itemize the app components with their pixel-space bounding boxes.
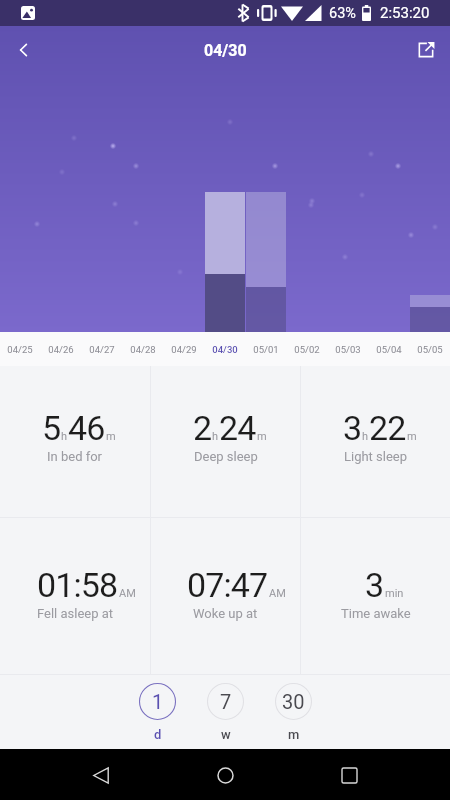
staticText: 07:47 [187, 565, 268, 605]
button[interactable]: 1 [139, 675, 176, 742]
button[interactable]: 04/29 [163, 332, 204, 366]
button[interactable]: 05/03 [327, 332, 368, 366]
staticText: 3 [343, 408, 362, 448]
button[interactable]: 3 [301, 518, 450, 674]
button[interactable]: 3 [301, 366, 450, 517]
staticText: 3 [365, 565, 384, 605]
staticText: 7 [220, 690, 232, 713]
staticText: 04/27 [89, 344, 115, 355]
staticText: 04/26 [48, 344, 74, 355]
button[interactable]: 05/05 [409, 332, 450, 366]
staticText: 2:53:20 [380, 4, 430, 22]
button[interactable]: Recents [325, 751, 373, 799]
staticText: 05/02 [294, 344, 320, 355]
button[interactable]: Back [0, 26, 48, 74]
staticText: 01:58 [37, 565, 118, 605]
staticText: Time awake [341, 606, 411, 621]
staticText: min [385, 587, 404, 600]
staticText: 04/29 [171, 344, 197, 355]
staticText: h [362, 430, 369, 443]
staticText: 04/28 [130, 344, 156, 355]
staticText: AM [269, 587, 286, 600]
button[interactable]: 05/02 [286, 332, 327, 366]
staticText: 05/01 [253, 344, 279, 355]
staticText: 05/03 [335, 344, 361, 355]
staticText: m [407, 430, 417, 443]
staticText: 63% [329, 5, 356, 22]
button[interactable]: 5 [0, 366, 150, 517]
button[interactable]: 04/26 [40, 332, 81, 366]
staticText: d [154, 727, 162, 742]
staticText: m [288, 727, 300, 742]
staticText: 05/04 [376, 344, 402, 355]
staticText: AM [119, 587, 136, 600]
button[interactable]: Share [402, 26, 450, 74]
staticText: 04/25 [7, 344, 33, 355]
staticText: Woke up at [193, 606, 258, 621]
staticText: 5 [42, 408, 61, 448]
staticText: Light sleep [344, 449, 408, 464]
staticText: m [106, 430, 116, 443]
staticText: 46 [68, 408, 105, 448]
staticText: 04/30 [212, 344, 238, 355]
staticText: Fell asleep at [37, 606, 114, 621]
staticText: 30 [282, 690, 305, 713]
button[interactable]: 04/27 [81, 332, 122, 366]
staticText: h [61, 430, 68, 443]
button[interactable]: 05/01 [245, 332, 286, 366]
button[interactable]: 07:47 [151, 518, 300, 674]
staticText: 22 [369, 408, 406, 448]
button[interactable]: Back [77, 751, 125, 799]
button[interactable]: 05/04 [368, 332, 409, 366]
button[interactable]: 2 [151, 366, 300, 517]
button[interactable]: 04/30 [204, 332, 245, 366]
staticText: 05/05 [417, 344, 443, 355]
staticText: 04/30 [204, 41, 247, 60]
staticText: 2 [193, 408, 212, 448]
staticText: 24 [219, 408, 256, 448]
button[interactable]: Home [201, 751, 249, 799]
staticText: Deep sleep [194, 449, 258, 464]
button[interactable]: 30 [275, 675, 312, 742]
button[interactable]: 01:58 [0, 518, 150, 674]
staticText: 1 [152, 690, 164, 713]
button[interactable]: 04/25 [0, 332, 40, 366]
button[interactable]: 7 [207, 675, 244, 742]
staticText: w [221, 727, 231, 742]
staticText: h [212, 430, 219, 443]
button[interactable]: 04/28 [122, 332, 163, 366]
staticText: m [257, 430, 267, 443]
staticText: In bed for [47, 449, 103, 464]
